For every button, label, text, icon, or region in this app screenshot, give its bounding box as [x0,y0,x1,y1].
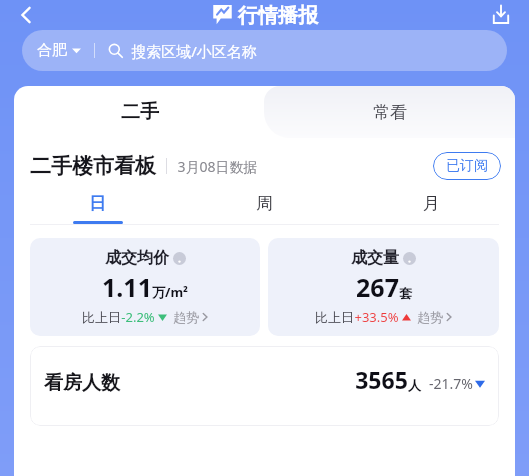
button[interactable]: 成交量 [268,238,499,336]
button[interactable]: 日 [14,193,181,224]
button[interactable]: 月 [348,193,515,224]
staticText: 月 [423,193,440,214]
staticText: 成交量 [351,248,399,268]
staticText: 合肥 [37,41,67,60]
staticText: 趋势 [173,309,199,325]
staticText: 成交均价 [105,248,169,268]
staticText: 行情播报 [238,3,318,28]
staticText: 万/m² [152,283,188,301]
staticText: 周 [256,193,273,214]
staticText: 3月08日数据 [177,157,258,176]
button[interactable]: 常看 [264,86,515,138]
staticText: -2.2% [121,308,155,326]
staticText: 套 [399,285,412,301]
staticText: 二手 [121,100,159,124]
button[interactable]: Back [8,0,44,30]
staticText: 267 [356,270,399,304]
button[interactable]: 已订阅 [433,152,501,180]
staticText: 比上日 [82,309,121,325]
staticText: 常看 [373,102,407,123]
staticText: 人 [408,377,421,393]
button[interactable]: Download [483,0,519,30]
staticText: 趋势 [417,309,443,325]
staticText: 日 [89,193,106,214]
staticText: +33.5% [354,308,399,326]
button[interactable]: 周 [181,193,348,224]
staticText: 比上日 [315,309,354,325]
staticText: -21.7% [429,374,473,393]
staticText: 3565 [355,364,408,395]
button[interactable]: 看房人数 [30,346,499,426]
staticText: 1.11 [102,270,152,304]
button[interactable]: 二手 [14,86,265,138]
button[interactable]: 合肥 [22,30,507,71]
staticText: 看房人数 [44,371,120,395]
button[interactable]: 成交均价 [30,238,260,336]
staticText: 搜索区域/小区名称 [131,41,257,61]
staticText: 二手楼市看板 [30,153,156,179]
staticText: 已订阅 [446,157,488,175]
